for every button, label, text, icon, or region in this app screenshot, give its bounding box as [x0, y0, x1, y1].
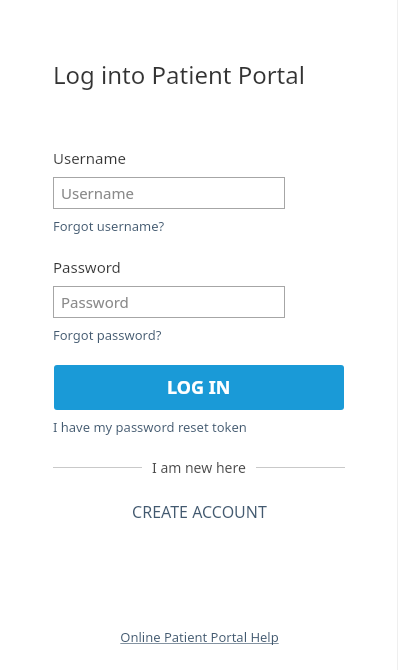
button[interactable]: Forgot password?: [53, 326, 162, 344]
button[interactable]: Online Patient Portal Help: [0, 628, 398, 646]
staticText: Username: [53, 148, 126, 168]
staticText: I have my password reset token: [53, 418, 247, 436]
staticText: Username: [61, 183, 134, 203]
staticText: LOG IN: [167, 375, 231, 400]
staticText: Log into Patient Portal: [53, 58, 305, 91]
button[interactable]: Username: [53, 177, 285, 209]
staticText: Password: [53, 257, 121, 277]
staticText: I am new here: [152, 458, 246, 477]
button[interactable]: LOG IN: [54, 365, 344, 410]
button[interactable]: Password: [53, 286, 285, 318]
button[interactable]: Forgot username?: [53, 217, 165, 235]
staticText: Password: [61, 292, 129, 312]
button[interactable]: CREATE ACCOUNT: [0, 501, 398, 523]
button[interactable]: I have my password reset token: [53, 418, 247, 436]
staticText: Forgot username?: [53, 217, 165, 235]
staticText: CREATE ACCOUNT: [132, 501, 267, 523]
staticText: Forgot password?: [53, 326, 162, 344]
staticText: Online Patient Portal Help: [120, 628, 279, 646]
